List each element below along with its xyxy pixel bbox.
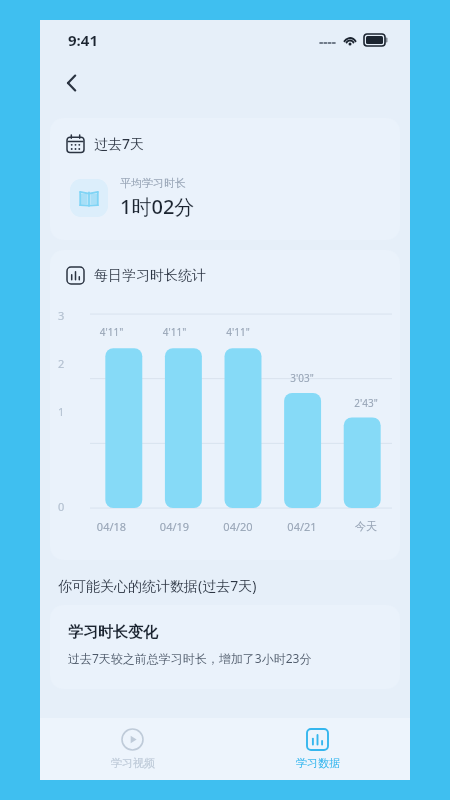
staticText: 4'11" (80, 325, 143, 339)
button[interactable]: 学习时长变化 (50, 605, 400, 689)
staticText: 9:41 (68, 30, 98, 50)
staticText: 过去7天较之前总学习时长，增加了3小时23分 (68, 650, 312, 666)
staticText: 04/18 (80, 519, 143, 534)
staticText: 04/19 (143, 519, 206, 534)
staticText: 今天 (334, 519, 398, 533)
staticText: 1 (58, 404, 65, 419)
staticText: 你可能关心的统计数据(过去7天) (58, 576, 257, 595)
staticText: 1时02分 (120, 193, 195, 220)
button[interactable]: Back (54, 65, 90, 101)
button[interactable]: 学习数据 (225, 718, 410, 780)
staticText: 3'03" (270, 371, 334, 385)
staticText: 学习视频 (111, 756, 155, 770)
staticText: 04/20 (206, 519, 270, 534)
staticText: 学习数据 (296, 756, 340, 770)
staticText: 过去7天 (94, 134, 145, 153)
staticText: 每日学习时长统计 (94, 267, 206, 285)
button[interactable]: 学习视频 (40, 718, 225, 780)
staticText: 学习时长变化 (68, 623, 158, 642)
staticText: 04/21 (270, 519, 334, 534)
button[interactable]: 过去7天 (50, 118, 400, 240)
staticText: 4'11" (206, 325, 270, 339)
staticText: 3 (58, 308, 65, 323)
staticText: 平均学习时长 (120, 176, 186, 190)
staticText: 2 (58, 356, 65, 371)
staticText: 4'11" (143, 325, 206, 339)
staticText: 0 (58, 499, 65, 514)
staticText: 2'43" (334, 396, 398, 410)
